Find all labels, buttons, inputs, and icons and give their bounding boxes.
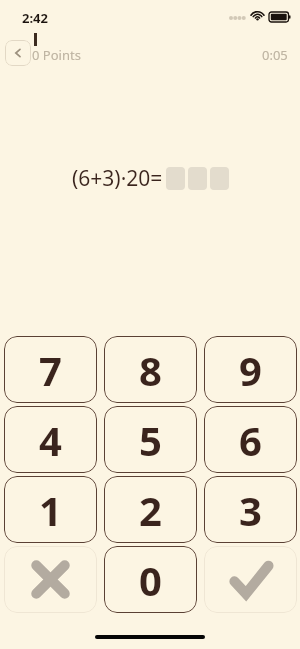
button[interactable]: 0	[104, 546, 197, 613]
button[interactable]: 7	[4, 336, 97, 403]
button[interactable]: 5	[104, 406, 197, 473]
staticText: 7	[39, 343, 62, 397]
staticText: 0	[139, 553, 162, 607]
button[interactable]: 1	[4, 476, 97, 543]
staticText: 8	[139, 343, 162, 397]
staticText: 3	[239, 483, 262, 537]
staticText: 0 Points	[32, 46, 81, 64]
button[interactable]: Submit	[204, 546, 297, 613]
staticText: 4	[39, 413, 62, 467]
button[interactable]: 3	[204, 476, 297, 543]
button[interactable]: 6	[204, 406, 297, 473]
staticText: 6	[239, 413, 262, 467]
staticText: (6+3)·20=	[72, 164, 163, 193]
staticText: 5	[139, 413, 162, 467]
staticText: 2	[139, 483, 162, 537]
button[interactable]: 4	[4, 406, 97, 473]
button[interactable]: Clear	[4, 546, 97, 613]
staticText: 1	[39, 483, 62, 537]
staticText: 2:42	[22, 9, 48, 27]
staticText: 0:05	[262, 46, 288, 64]
button[interactable]: 8	[104, 336, 197, 403]
staticText: 9	[239, 343, 262, 397]
button[interactable]: 9	[204, 336, 297, 403]
button[interactable]: 2	[104, 476, 197, 543]
button[interactable]: Back	[5, 40, 31, 66]
